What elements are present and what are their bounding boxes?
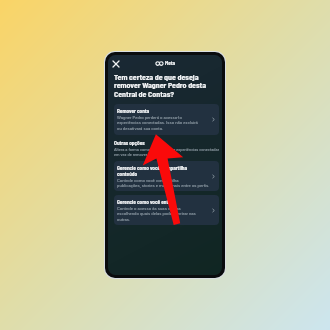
staticText: Controle o acesso às suas contas escolhe… xyxy=(117,206,196,222)
button[interactable]: Fechar xyxy=(110,58,121,69)
button[interactable]: Gerencie como você entra xyxy=(114,195,219,225)
staticText: Wagner Pedro perderá o acesso-lo experiê… xyxy=(117,115,198,131)
staticText: Outras opções xyxy=(114,140,145,146)
staticText: Tem certeza de que deseja remover Wagner… xyxy=(114,72,207,99)
staticText: Meta xyxy=(165,60,176,66)
staticText: Remover conta xyxy=(117,108,150,114)
staticText: Gerencie como você entra xyxy=(117,199,173,205)
button[interactable]: Gerencie como você compartilha conteúdo xyxy=(114,161,219,191)
staticText: Altera a forma como suas contas e experi… xyxy=(114,147,219,157)
staticText: Controle como você compartilha publicaçõ… xyxy=(117,178,209,188)
staticText: Gerencie como você compartilha conteúdo xyxy=(117,165,188,177)
button[interactable]: Remover conta xyxy=(114,104,219,135)
